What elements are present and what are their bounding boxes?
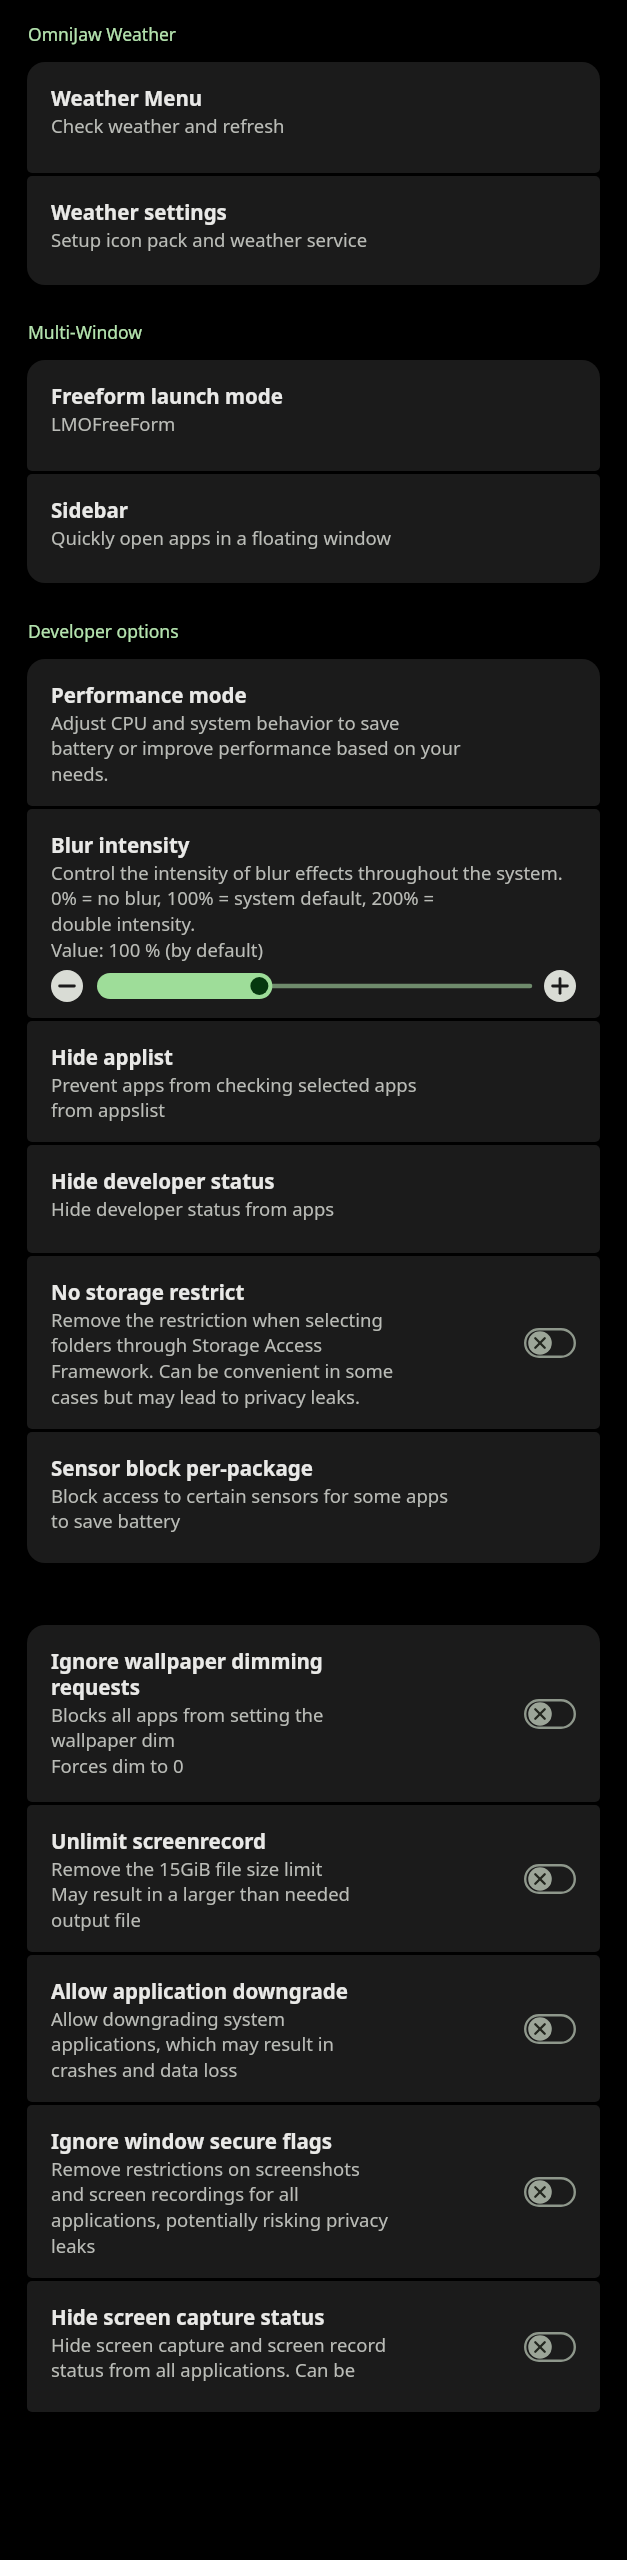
button[interactable]: Toggle, off [524,2177,576,2207]
staticText: Ignore wallpaper dimming requests [51,1647,323,1701]
staticText: Hide developer status [51,1167,275,1195]
staticText: Remove restrictions on screenshots and s… [51,2156,388,2258]
staticText: Hide screen capture and screen record st… [51,2332,387,2382]
button[interactable]: Ignore window secure flags [27,2105,600,2278]
staticText: Prevent apps from checking selected apps… [51,1072,417,1122]
button[interactable]: Ignore wallpaper dimming requests [27,1625,600,1802]
button[interactable]: Sensor block per-package [27,1432,600,1563]
button[interactable]: Hide screen capture status [27,2281,600,2412]
button[interactable]: Blur intensity slider [97,971,530,1001]
staticText: Hide applist [51,1043,173,1071]
staticText: Allow downgrading system applications, w… [51,2006,334,2082]
staticText: Allow application downgrade [51,1977,348,2005]
staticText: Remove the restriction when selecting fo… [51,1307,394,1409]
button[interactable]: Hide applist [27,1021,600,1142]
button[interactable]: Sidebar [27,474,600,583]
staticText: Adjust CPU and system behavior to save b… [51,710,461,786]
staticText: Unlimit screenrecord [51,1827,266,1855]
staticText: Control the intensity of blur effects th… [51,860,563,962]
button[interactable]: Weather settings [27,176,600,285]
staticText: Hide screen capture status [51,2303,325,2331]
button[interactable]: Toggle, off [524,1699,576,1729]
staticText: Ignore window secure flags [51,2127,333,2155]
button[interactable]: Toggle, off [524,2014,576,2044]
button[interactable]: Increase blur intensity [544,970,576,1002]
staticText: Weather Menu [51,84,203,112]
staticText: Sidebar [51,496,129,524]
staticText: OmniJaw Weather [28,22,177,46]
button[interactable]: Toggle, off [524,1328,576,1358]
staticText: Freeform launch mode [51,382,283,410]
button[interactable]: Decrease blur intensity [51,970,83,1002]
button[interactable]: Unlimit screenrecord [27,1805,600,1952]
button[interactable]: Toggle, off [524,1864,576,1894]
staticText: Sensor block per-package [51,1454,313,1482]
staticText: Remove the 15GiB file size limit May res… [51,1856,350,1932]
staticText: Quickly open apps in a floating window [51,525,391,550]
staticText: Blocks all apps from setting the wallpap… [51,1702,324,1778]
button[interactable]: Freeform launch mode [27,360,600,471]
staticText: Blur intensity [51,831,190,859]
button[interactable]: Performance mode [27,659,600,806]
staticText: Performance mode [51,681,247,709]
staticText: LMOFreeForm [51,411,176,436]
staticText: Hide developer status from apps [51,1196,335,1221]
staticText: Setup icon pack and weather service [51,227,368,252]
button[interactable]: Hide developer status [27,1145,600,1253]
button[interactable]: No storage restrict [27,1256,600,1429]
staticText: Block access to certain sensors for some… [51,1483,449,1533]
staticText: Check weather and refresh [51,113,285,138]
button[interactable]: Allow application downgrade [27,1955,600,2102]
staticText: Weather settings [51,198,227,226]
staticText: No storage restrict [51,1278,245,1306]
button[interactable]: Blur intensity [27,809,600,1018]
staticText: Developer options [28,619,179,643]
button[interactable]: Toggle, off [524,2332,576,2362]
button[interactable]: Weather Menu [27,62,600,173]
staticText: Multi-Window [28,320,143,344]
